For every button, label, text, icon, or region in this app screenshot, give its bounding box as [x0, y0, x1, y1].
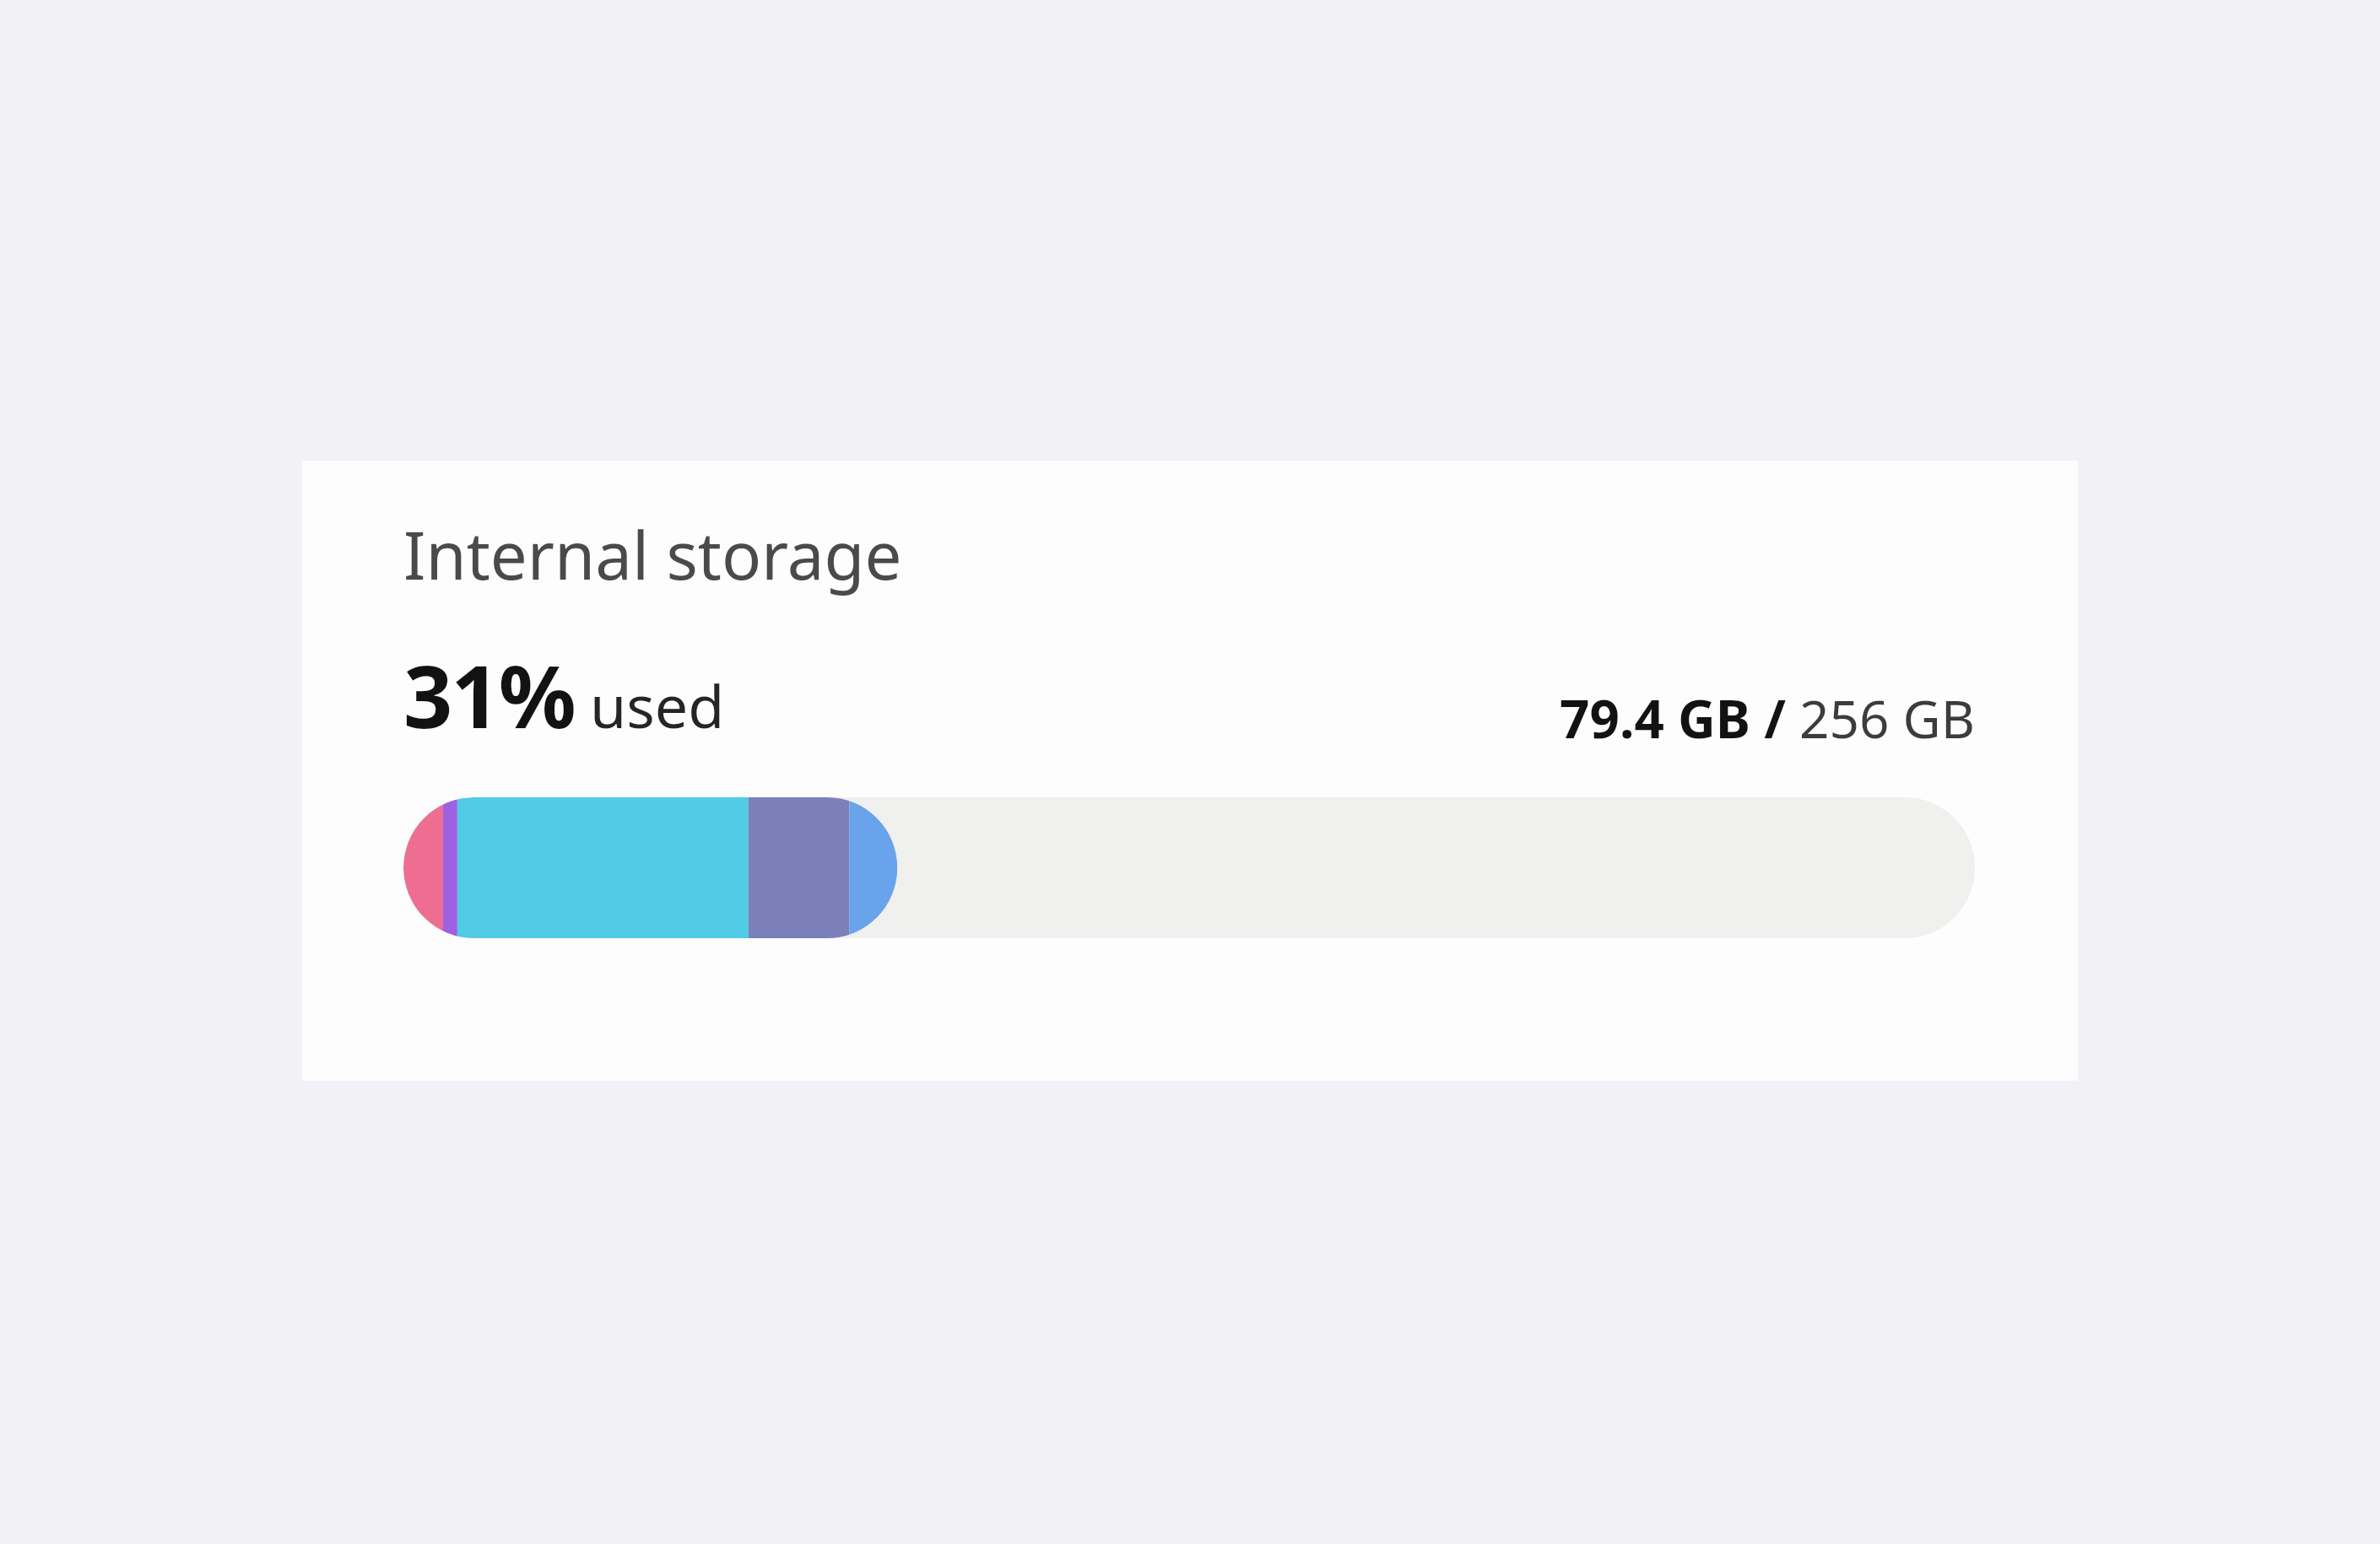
- button[interactable]: Storage usage 31 percent: [403, 797, 1975, 938]
- staticText: 31% used: [403, 636, 725, 753]
- staticText: Internal storage: [403, 510, 902, 599]
- staticText: 79.4 GB / 256 GB: [1560, 683, 1975, 753]
- button[interactable]: Internal storage: [302, 461, 2078, 1081]
